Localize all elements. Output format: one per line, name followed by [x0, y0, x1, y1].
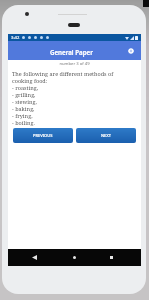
button[interactable]: Settings	[125, 45, 137, 57]
staticText: The following are different methods of c…	[12, 70, 142, 126]
staticText: number 3 of 49	[8, 61, 141, 67]
button[interactable]: PREVIOUS	[13, 128, 73, 143]
button[interactable]: Back	[29, 249, 39, 266]
staticText: General Paper	[50, 48, 93, 56]
staticText: NEXT	[101, 133, 112, 138]
button[interactable]: Recents	[106, 249, 116, 266]
button[interactable]: Home	[69, 249, 79, 266]
staticText: 3:42	[11, 35, 20, 41]
staticText: PREVIOUS	[33, 133, 53, 138]
button[interactable]: NEXT	[76, 128, 136, 143]
